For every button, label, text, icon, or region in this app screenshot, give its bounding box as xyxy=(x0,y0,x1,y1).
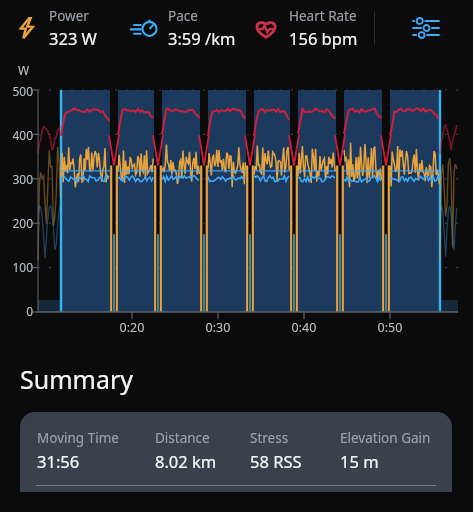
staticText: 15 m xyxy=(340,450,379,472)
staticText: Summary xyxy=(20,362,134,396)
staticText: 0:40 xyxy=(282,319,326,336)
staticText: Power xyxy=(49,7,89,25)
staticText: 200 xyxy=(0,215,33,231)
staticText: 156 bpm xyxy=(289,27,358,49)
staticText: W xyxy=(18,62,30,78)
button[interactable]: Power xyxy=(14,6,97,50)
staticText: 31:56 xyxy=(37,450,80,472)
staticText: Stress xyxy=(250,429,289,447)
button[interactable]: Moving Time xyxy=(20,412,452,492)
staticText: Moving Time xyxy=(37,429,119,447)
staticText: Pace xyxy=(168,7,198,25)
staticText: 400 xyxy=(0,127,33,143)
staticText: 58 RSS xyxy=(250,450,302,472)
staticText: 0:20 xyxy=(110,319,154,336)
staticText: 0:50 xyxy=(368,319,412,336)
staticText: 3:59 /km xyxy=(168,27,236,49)
staticText: 323 W xyxy=(49,27,97,49)
staticText: 300 xyxy=(0,171,33,187)
staticText: 500 xyxy=(0,83,33,99)
staticText: 0:30 xyxy=(196,319,240,336)
staticText: Distance xyxy=(155,429,210,447)
staticText: 8.02 km xyxy=(155,450,217,472)
staticText: Elevation Gain xyxy=(340,429,431,447)
button[interactable]: Pace xyxy=(131,6,236,50)
button[interactable]: Heart Rate xyxy=(252,6,358,50)
staticText: 0 xyxy=(0,303,33,319)
staticText: 100 xyxy=(0,259,33,275)
button[interactable]: Chart settings xyxy=(404,8,448,48)
staticText: Heart Rate xyxy=(289,7,357,25)
